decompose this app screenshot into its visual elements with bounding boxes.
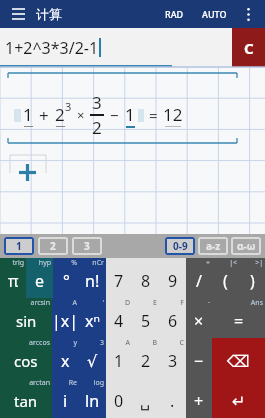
staticText: √ [87,352,98,371]
staticText: A [125,338,130,348]
staticText: 1 [16,239,22,253]
staticText: log [93,378,104,388]
button[interactable]: . [159,378,186,418]
staticText: nCr [92,258,104,268]
staticText: sin [16,311,37,331]
staticText: B [152,338,157,348]
staticText: ÷ [205,258,210,268]
staticText: 1 [125,103,135,126]
button[interactable]: % [53,258,79,298]
button[interactable]: C [159,338,186,378]
staticText: 3 [99,338,104,348]
button[interactable]: ' [79,298,106,338]
button[interactable]: ⌫ [212,338,265,378]
button[interactable]: AUTO [198,8,231,20]
staticText: RAD [165,8,184,20]
staticText: ↵ [232,392,246,411]
button[interactable]: 3 [79,338,106,378]
staticText: i [63,390,68,412]
staticText: 3 [168,350,178,372]
button[interactable]: − [186,338,212,378]
staticText: 4 [114,310,124,332]
button[interactable]: Add row [14,159,40,185]
staticText: 9 [168,270,178,292]
button[interactable]: ÷ [186,258,212,298]
button[interactable]: arcsin [0,298,52,338]
staticText: Re [68,378,77,388]
staticText: D [124,298,130,308]
button[interactable]: E [132,298,159,338]
button[interactable]: C [232,28,265,67]
staticText: F [180,298,184,308]
staticText: − [194,350,204,372]
button[interactable]: 0-9 [165,237,195,255]
staticText: 0 [114,390,124,412]
button[interactable]: arccos [0,338,52,378]
staticText: 0-9 [173,239,188,253]
button[interactable]: + [186,378,212,418]
staticText: 3 [65,99,72,114]
button[interactable]: B [132,338,159,378]
staticText: 3 [92,91,102,114]
staticText: n! [85,270,100,292]
staticText: · [208,298,210,308]
staticText: 1+2^3*3/2-1 [5,37,99,59]
staticText: x [61,350,70,372]
button[interactable]: nCr [79,258,106,298]
button[interactable]: |< [212,258,239,298]
staticText: A [72,298,77,308]
button[interactable]: α-ω [231,237,261,255]
button[interactable]: >| [239,258,265,298]
button[interactable]: 2 [38,237,68,255]
staticText: / [196,270,202,292]
button[interactable]: y [52,338,79,378]
staticText: × [77,106,85,124]
button[interactable]: arctan [0,378,52,418]
staticText: 计算 [36,6,62,22]
staticText: 6 [168,310,178,332]
staticText: cos [14,351,38,371]
staticText: e [35,270,45,292]
staticText: 2 [55,103,65,126]
button[interactable]: A [52,298,79,338]
staticText: a-z [206,239,221,253]
button[interactable]: ␣ [132,378,159,418]
staticText: = [234,310,244,332]
button[interactable]: trig [0,258,26,298]
button[interactable]: a-z [198,237,228,255]
staticText: 2 [92,116,102,139]
button[interactable]: 8 [132,258,159,298]
button[interactable]: 3 [72,237,102,255]
staticText: × [194,310,204,332]
staticText: 3 [84,239,90,253]
button[interactable]: Ans [212,298,265,338]
button[interactable]: A [106,338,132,378]
staticText: 12 [163,103,183,126]
staticText: y [73,338,77,348]
staticText: . [170,390,175,412]
staticText: ⌫ [227,352,250,371]
staticText: >| [255,258,263,268]
button[interactable]: ↵ [212,378,265,418]
button[interactable]: 1 [4,237,34,255]
staticText: α-ω [237,239,256,253]
button[interactable]: hyp [26,258,53,298]
button[interactable]: F [159,298,186,338]
button[interactable]: log [79,378,106,418]
button[interactable]: 9 [159,258,186,298]
staticText: C [179,338,184,348]
staticText: arctan [29,378,50,388]
staticText: 2 [50,239,56,253]
button[interactable]: D [106,298,132,338]
button[interactable]: Menu [8,4,28,24]
button[interactable]: More options [239,5,257,23]
staticText: 8 [141,270,151,292]
button[interactable]: 7 [106,258,132,298]
button[interactable]: Re [52,378,79,418]
staticText: |x| [52,310,79,332]
button[interactable]: 0 [106,378,132,418]
staticText: + [194,390,204,412]
button[interactable]: · [186,298,212,338]
button[interactable]: RAD [161,8,188,20]
staticText: arccos [29,338,50,348]
